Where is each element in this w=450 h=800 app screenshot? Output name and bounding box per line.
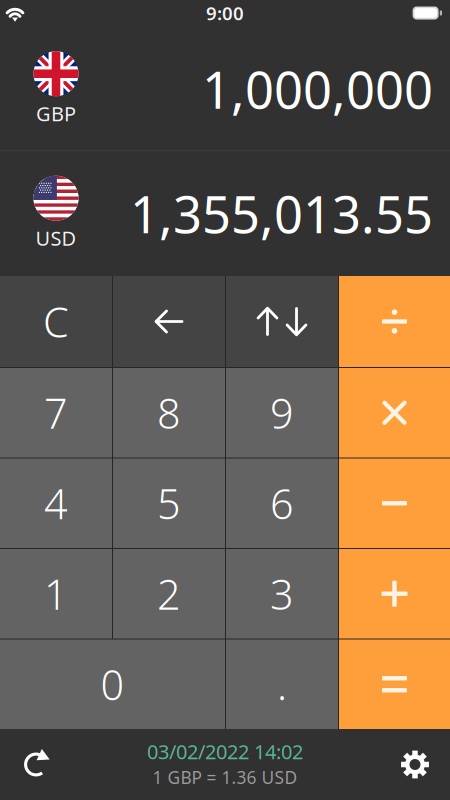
staticText: 2 [157,566,181,621]
staticText: 5 [157,476,181,531]
staticText: 9 [270,385,294,440]
button[interactable]: 1 [0,549,112,638]
staticText: C [43,294,69,349]
button[interactable]: 0 [0,639,225,729]
button[interactable]: Equals [339,639,450,729]
button[interactable]: USD [0,151,100,276]
button[interactable]: Refresh rates [12,740,60,788]
staticText: 9:00 [206,1,244,25]
button[interactable]: Multiply [339,368,450,457]
button[interactable]: 9 [226,368,338,457]
staticText: 7 [44,385,68,440]
button[interactable]: Add [339,549,450,638]
button[interactable]: 2 [113,549,225,638]
button[interactable]: 3 [226,549,338,638]
staticText: . [277,657,287,712]
button[interactable]: C [0,276,112,367]
staticText: GBP [36,100,76,127]
button[interactable]: 4 [0,458,112,548]
button[interactable]: 5 [113,458,225,548]
staticText: 1 GBP = 1.36 USD [152,766,297,789]
staticText: 6 [270,476,294,531]
button[interactable]: 6 [226,458,338,548]
staticText: 3 [270,566,294,621]
button[interactable]: 8 [113,368,225,457]
button[interactable]: Swap currencies [226,276,338,367]
staticText: 1,000,000 [202,55,433,123]
staticText: 0 [100,657,124,712]
button[interactable]: Backspace [113,276,225,367]
button[interactable]: Subtract [339,458,450,548]
staticText: 03/02/2022 14:02 [147,738,303,765]
staticText: 4 [44,476,68,531]
button[interactable]: Divide [339,276,450,367]
staticText: USD [35,225,76,251]
button[interactable]: . [226,639,338,729]
staticText: 8 [157,385,181,440]
button[interactable]: 7 [0,368,112,457]
staticText: 1 [44,566,68,621]
button[interactable]: Settings [391,740,439,788]
staticText: 1,355,013.55 [130,180,433,247]
button[interactable]: GBP [0,28,100,150]
